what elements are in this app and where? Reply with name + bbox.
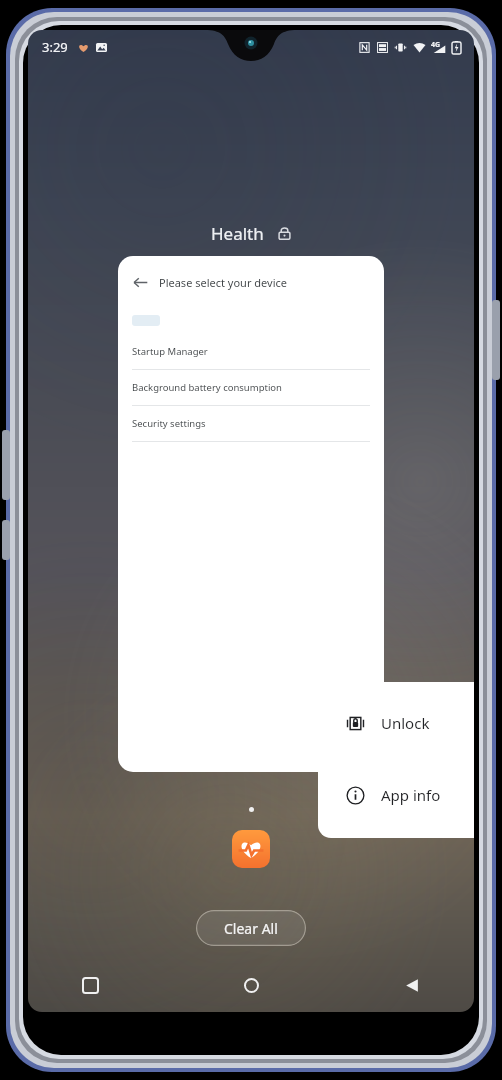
button[interactable]: Back (394, 967, 430, 1003)
button[interactable]: Clear All (196, 910, 306, 946)
button[interactable]: Security settings (118, 406, 384, 442)
button[interactable]: Startup Manager (118, 334, 384, 370)
staticText: Background battery consumption (132, 381, 282, 394)
button[interactable]: Recents (72, 967, 108, 1003)
staticText: App info (381, 785, 441, 805)
button[interactable]: Back (118, 256, 384, 772)
button[interactable]: Back (132, 274, 149, 291)
staticText: Clear All (224, 919, 278, 938)
staticText: Startup Manager (132, 345, 208, 358)
staticText: Security settings (132, 417, 206, 430)
button[interactable]: Health app icon (232, 830, 270, 868)
staticText: 3:29 (42, 38, 68, 56)
button[interactable]: Home (233, 967, 269, 1003)
button[interactable]: App info (318, 778, 474, 812)
staticText: 4G (431, 40, 441, 50)
button[interactable]: Unlock (318, 706, 474, 740)
staticText: Please select your device (159, 275, 287, 290)
staticText: Health (211, 222, 264, 245)
button[interactable]: Background battery consumption (118, 370, 384, 406)
button[interactable]: Locked task (277, 226, 292, 241)
staticText: Unlock (381, 713, 430, 733)
